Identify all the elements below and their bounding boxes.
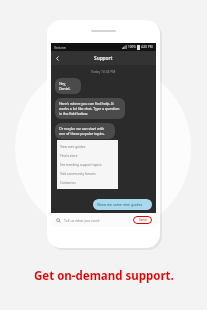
staticText: 4:20 PM xyxy=(141,45,153,49)
staticText: Hey, Daniel. xyxy=(59,81,77,91)
button[interactable]: Tell us what you need xyxy=(64,218,133,223)
staticText: Here's where you can find help. It works… xyxy=(59,101,121,116)
button[interactable]: Show me some mini guides xyxy=(93,199,152,210)
staticText: Today 10:34 PM xyxy=(91,69,116,73)
button[interactable]: Send xyxy=(133,216,152,224)
button[interactable]: See trending support topics xyxy=(57,160,118,169)
staticText: Contact us xyxy=(60,181,76,185)
button[interactable]: Back xyxy=(52,53,62,63)
staticText: Tell us what you need xyxy=(64,218,100,223)
staticText: Get on-demand support. xyxy=(34,268,174,284)
staticText: See trending support topics xyxy=(60,163,102,167)
staticText: Support xyxy=(94,55,113,62)
button[interactable]: Contact us xyxy=(57,178,118,187)
staticText: View mini guides xyxy=(60,145,86,149)
button[interactable]: Find a store xyxy=(57,151,118,160)
staticText: Find a store xyxy=(60,154,78,158)
staticText: Visit community forums xyxy=(60,172,96,176)
staticText: Show me some mini guides xyxy=(97,202,143,207)
button[interactable]: Visit community forums xyxy=(57,169,118,178)
staticText: Send xyxy=(139,218,147,222)
button[interactable]: View mini guides xyxy=(57,142,118,151)
staticText: Or maybe we can start with one of these … xyxy=(59,126,111,136)
staticText: 100% xyxy=(128,45,136,49)
staticText: Verizon xyxy=(54,45,66,50)
button[interactable]: Search xyxy=(55,217,62,224)
